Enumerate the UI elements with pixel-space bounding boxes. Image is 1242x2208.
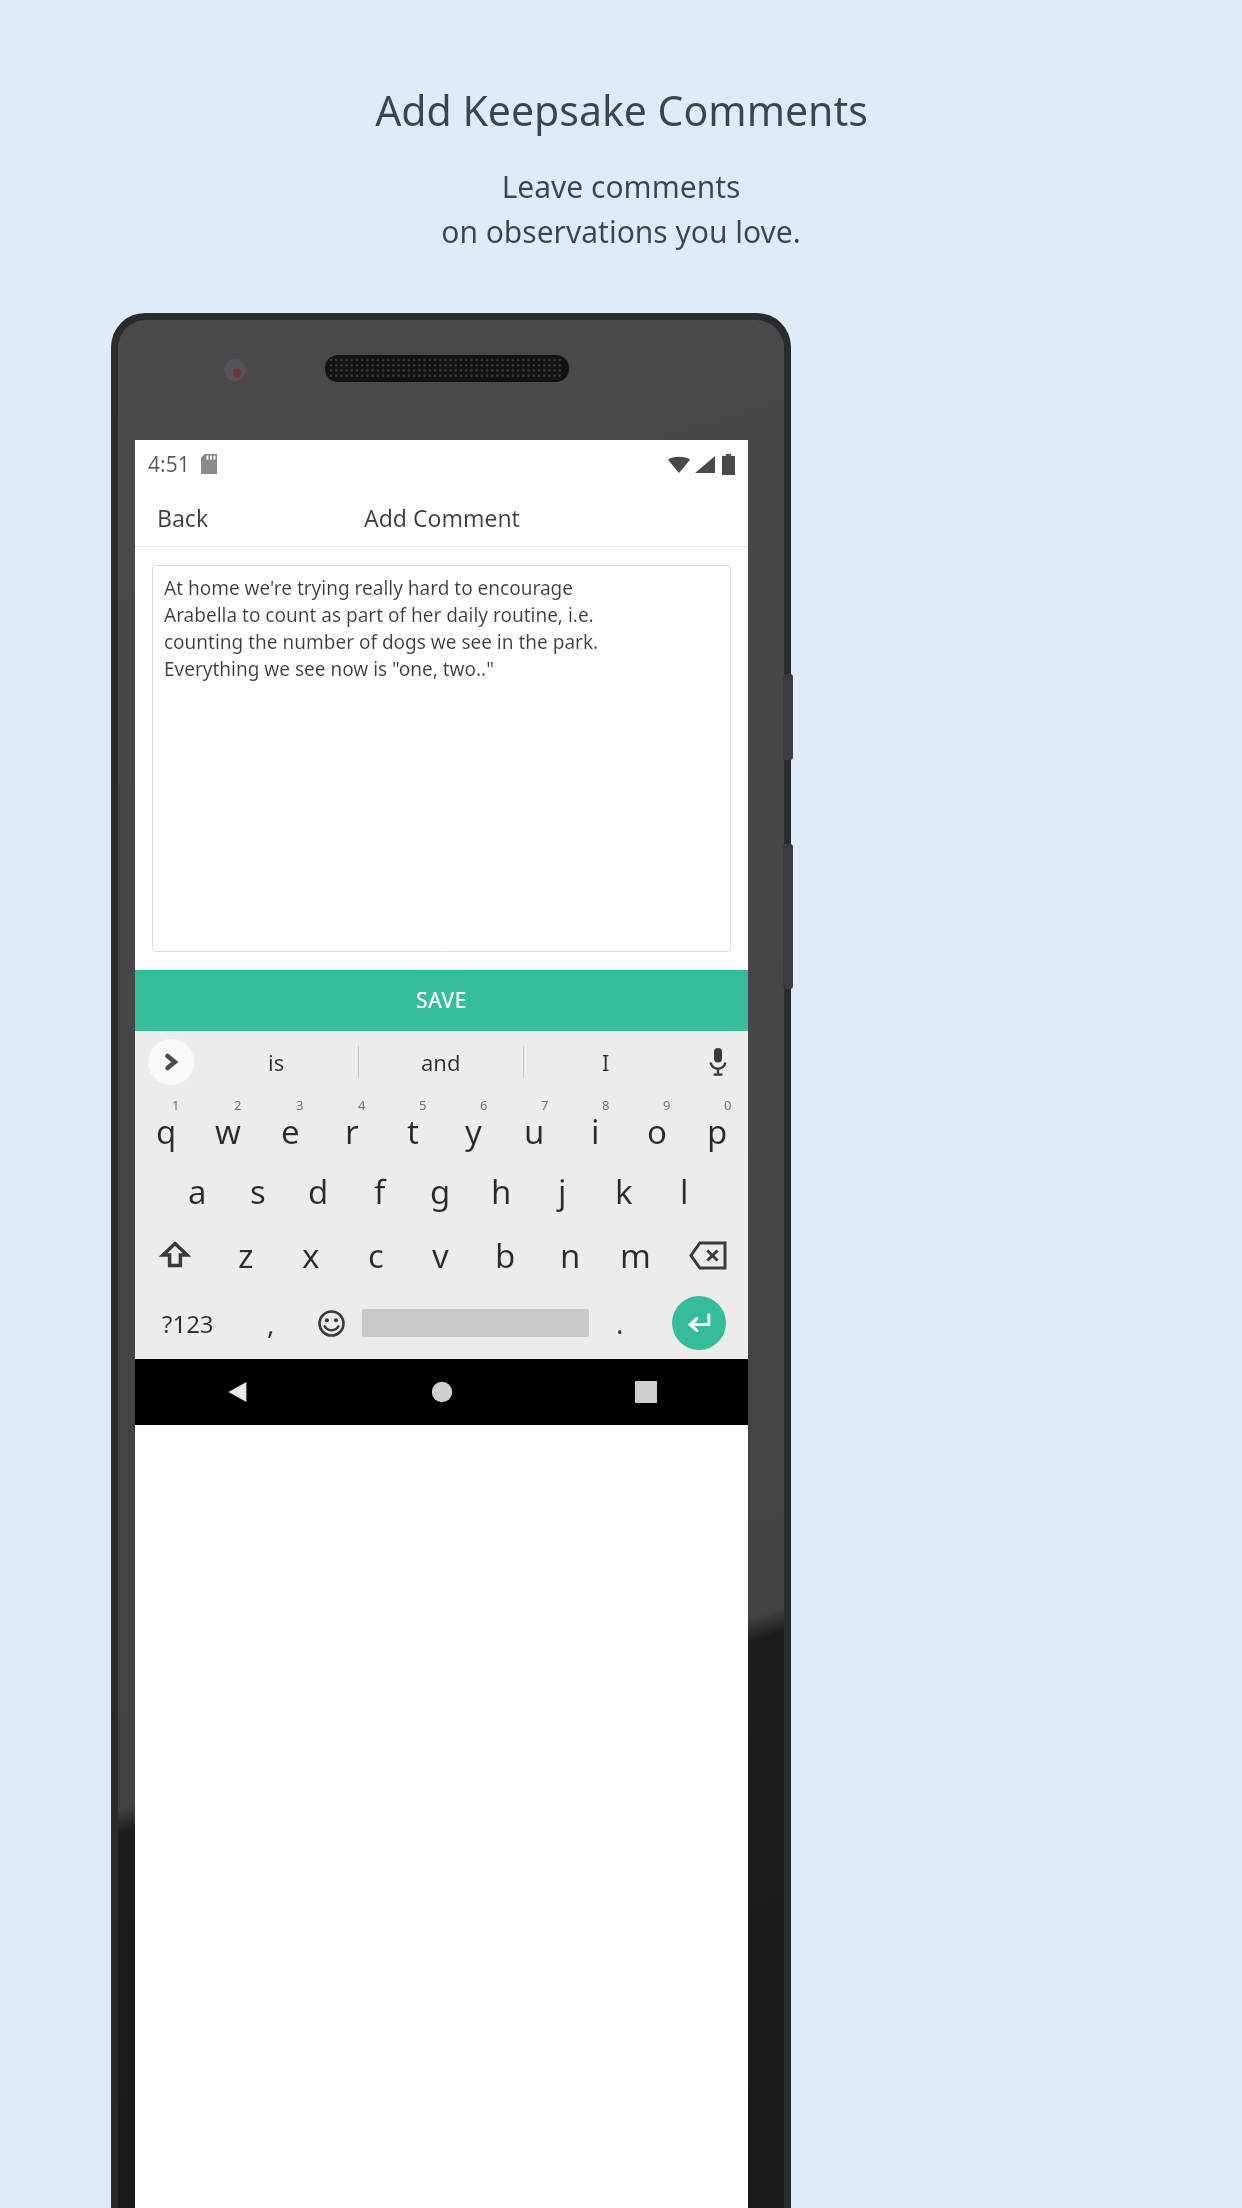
- staticText: b: [495, 1233, 516, 1278]
- staticText: e: [281, 1109, 300, 1154]
- staticText: c: [368, 1233, 384, 1278]
- staticText: Add Comment: [364, 502, 520, 533]
- button[interactable]: 3: [259, 1093, 321, 1159]
- button[interactable]: 0: [687, 1093, 748, 1159]
- button[interactable]: b: [473, 1223, 538, 1287]
- button[interactable]: k: [593, 1159, 654, 1223]
- staticText: Leave comments on observations you love.: [441, 166, 801, 252]
- button[interactable]: Back: [135, 1359, 340, 1425]
- button[interactable]: l: [654, 1159, 715, 1223]
- staticText: w: [215, 1109, 241, 1154]
- button[interactable]: Enter: [672, 1296, 726, 1350]
- staticText: is: [268, 1047, 285, 1077]
- button[interactable]: s: [227, 1159, 288, 1223]
- staticText: 5: [419, 1096, 427, 1114]
- staticText: 0: [724, 1096, 732, 1114]
- staticText: .: [616, 1304, 624, 1342]
- button[interactable]: SAVE: [135, 970, 748, 1031]
- staticText: ?123: [162, 1307, 214, 1340]
- staticText: 6: [480, 1096, 488, 1114]
- button[interactable]: and: [359, 1031, 523, 1093]
- button[interactable]: v: [408, 1223, 473, 1287]
- button[interactable]: g: [410, 1159, 471, 1223]
- staticText: i: [591, 1109, 600, 1154]
- staticText: q: [156, 1109, 177, 1154]
- button[interactable]: ,: [240, 1287, 301, 1359]
- staticText: a: [188, 1169, 207, 1214]
- button[interactable]: 9: [626, 1093, 687, 1159]
- staticText: 1: [172, 1096, 180, 1114]
- staticText: g: [430, 1169, 451, 1214]
- button[interactable]: 2: [197, 1093, 259, 1159]
- button[interactable]: a: [167, 1159, 227, 1223]
- staticText: l: [680, 1169, 689, 1214]
- staticText: s: [250, 1169, 266, 1214]
- button[interactable]: 7: [504, 1093, 565, 1159]
- button[interactable]: is: [194, 1031, 358, 1093]
- button[interactable]: I: [524, 1031, 688, 1093]
- button[interactable]: 5: [382, 1093, 443, 1159]
- staticText: 4:51: [148, 450, 190, 479]
- button[interactable]: d: [288, 1159, 349, 1223]
- staticText: ,: [267, 1304, 275, 1342]
- button[interactable]: 4: [321, 1093, 382, 1159]
- button[interactable]: 6: [443, 1093, 504, 1159]
- staticText: h: [491, 1169, 512, 1214]
- staticText: k: [615, 1169, 633, 1214]
- button[interactable]: m: [603, 1223, 668, 1287]
- button[interactable]: 8: [565, 1093, 626, 1159]
- staticText: and: [421, 1047, 461, 1077]
- staticText: t: [407, 1109, 419, 1154]
- button[interactable]: n: [538, 1223, 603, 1287]
- staticText: r: [345, 1109, 359, 1154]
- staticText: At home we're trying really hard to enco…: [164, 575, 599, 682]
- staticText: 3: [296, 1096, 304, 1114]
- staticText: 8: [602, 1096, 610, 1114]
- button[interactable]: Emoji: [301, 1287, 362, 1359]
- staticText: v: [432, 1233, 449, 1278]
- button[interactable]: Voice input: [688, 1031, 748, 1093]
- button[interactable]: Home: [340, 1359, 544, 1425]
- button[interactable]: x: [278, 1223, 343, 1287]
- staticText: z: [238, 1233, 254, 1278]
- button[interactable]: Backspace: [668, 1223, 748, 1287]
- button[interactable]: Recents: [544, 1359, 748, 1425]
- staticText: Back: [157, 502, 209, 533]
- staticText: x: [302, 1233, 320, 1278]
- staticText: I: [602, 1047, 610, 1077]
- staticText: 2: [234, 1096, 242, 1114]
- staticText: o: [647, 1109, 667, 1154]
- staticText: j: [558, 1169, 567, 1214]
- staticText: d: [308, 1169, 329, 1214]
- button[interactable]: At home we're trying really hard to enco…: [164, 575, 719, 942]
- button[interactable]: Shift: [135, 1223, 214, 1287]
- staticText: n: [560, 1233, 581, 1278]
- button[interactable]: f: [349, 1159, 410, 1223]
- staticText: p: [707, 1109, 728, 1154]
- button[interactable]: Back: [143, 494, 223, 541]
- button[interactable]: c: [343, 1223, 408, 1287]
- button[interactable]: h: [471, 1159, 532, 1223]
- staticText: SAVE: [416, 986, 468, 1015]
- button[interactable]: j: [532, 1159, 593, 1223]
- staticText: m: [620, 1233, 651, 1278]
- staticText: Add Keepsake Comments: [375, 82, 868, 138]
- button[interactable]: 1: [135, 1093, 197, 1159]
- staticText: u: [524, 1109, 545, 1154]
- staticText: 4: [358, 1096, 366, 1114]
- staticText: 9: [663, 1096, 671, 1114]
- staticText: 7: [541, 1096, 549, 1114]
- button[interactable]: More suggestions: [148, 1039, 194, 1085]
- button[interactable]: z: [214, 1223, 278, 1287]
- button[interactable]: ?123: [135, 1287, 240, 1359]
- button[interactable]: .: [589, 1287, 650, 1359]
- staticText: y: [465, 1109, 482, 1154]
- staticText: f: [374, 1169, 386, 1214]
